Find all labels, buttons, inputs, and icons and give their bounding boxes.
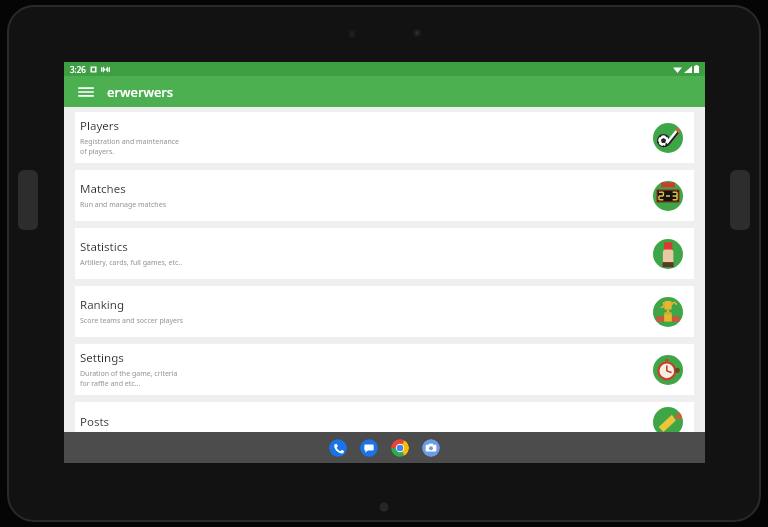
button[interactable]: Ranking bbox=[75, 286, 694, 337]
button[interactable]: Camera bbox=[422, 439, 440, 457]
staticText: Run and manage matches bbox=[80, 200, 166, 210]
button[interactable]: Matches bbox=[75, 170, 694, 221]
staticText: Players bbox=[80, 118, 119, 134]
staticText: Statistics bbox=[80, 239, 128, 255]
staticText: Settings bbox=[80, 350, 124, 366]
staticText: of players. bbox=[80, 147, 115, 157]
button[interactable]: Phone bbox=[329, 439, 347, 457]
staticText: Artillery, cards, full games, etc.. bbox=[80, 258, 183, 268]
button[interactable]: Chrome bbox=[391, 439, 409, 457]
staticText: Posts bbox=[80, 414, 110, 430]
staticText: Registration and maintenance bbox=[80, 137, 180, 147]
staticText: Matches bbox=[80, 181, 126, 197]
staticText: 3:26 bbox=[70, 64, 86, 75]
staticText: Score teams and soccer players bbox=[80, 316, 184, 326]
staticText: erwerwers bbox=[107, 83, 174, 101]
button[interactable]: Posts bbox=[75, 402, 694, 442]
button[interactable]: Players bbox=[75, 112, 694, 163]
button[interactable]: Settings bbox=[75, 344, 694, 395]
button[interactable]: Messages bbox=[360, 439, 378, 457]
staticText: for raffle and etc... bbox=[80, 379, 141, 389]
button[interactable]: Open navigation drawer bbox=[73, 79, 99, 105]
staticText: Duration of the game, criteria bbox=[80, 369, 178, 379]
staticText: Ranking bbox=[80, 297, 124, 313]
button[interactable]: Statistics bbox=[75, 228, 694, 279]
